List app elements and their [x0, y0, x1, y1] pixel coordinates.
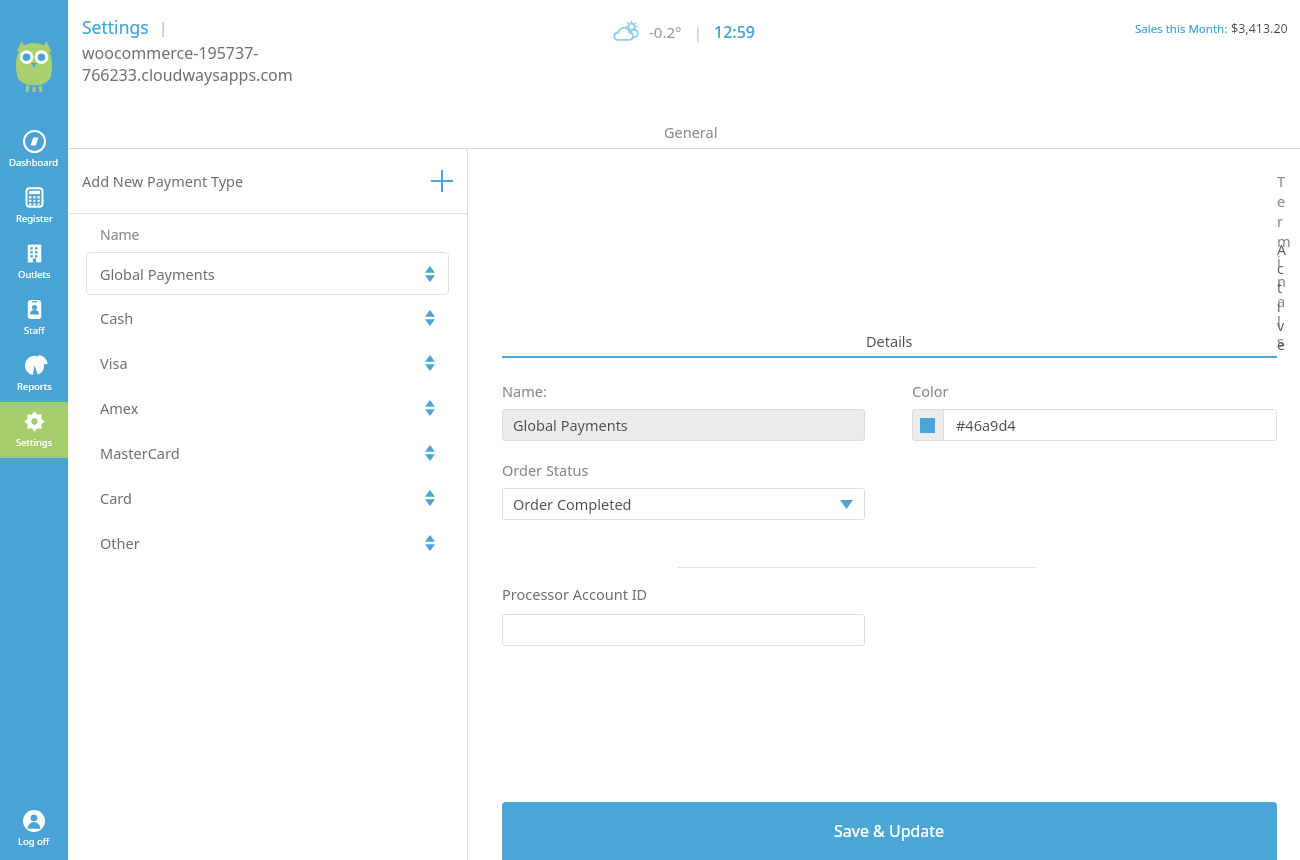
button[interactable]: Add New Payment Type	[68, 149, 467, 213]
staticText: Amex	[100, 398, 139, 418]
staticText: Processor Account ID	[502, 584, 648, 604]
staticText: Name:	[502, 381, 547, 401]
staticText: Name	[100, 225, 140, 244]
button[interactable]: Visa	[68, 340, 467, 385]
button[interactable]: Cash	[68, 295, 467, 340]
staticText: MasterCard	[100, 443, 180, 463]
staticText: |	[159, 17, 168, 37]
button[interactable]: #46a9d4	[912, 409, 1277, 441]
button[interactable]	[502, 614, 865, 646]
staticText: Order Status	[502, 460, 589, 480]
staticText: $3,413.20	[1231, 20, 1288, 37]
staticText: Outlets	[18, 268, 51, 281]
staticText: -0.2°	[649, 22, 682, 42]
staticText: |	[694, 23, 702, 42]
staticText: Cash	[100, 308, 134, 328]
button[interactable]: General	[82, 122, 1300, 149]
staticText: Register	[16, 212, 53, 225]
staticText: Global Payments	[513, 415, 628, 435]
button[interactable]: Reports	[0, 346, 68, 402]
button[interactable]: Details	[502, 331, 1277, 358]
staticText: #46a9d4	[956, 415, 1016, 435]
button[interactable]: Save & Update	[502, 802, 1277, 860]
staticText: Sales this Month:	[1135, 21, 1231, 37]
staticText: woocommerce-195737-	[82, 42, 259, 64]
staticText: Add New Payment Type	[82, 171, 244, 191]
button[interactable]: Outlets	[0, 234, 68, 290]
staticText: Details	[866, 331, 913, 351]
button[interactable]: Settings	[0, 402, 68, 458]
staticText: Global Payments	[100, 264, 215, 284]
staticText: Order Completed	[513, 494, 632, 514]
staticText: 12:59	[714, 21, 755, 43]
button[interactable]: Other	[68, 520, 467, 565]
staticText: Save & Update	[834, 820, 945, 842]
staticText: Other	[100, 533, 140, 553]
staticText: Color	[912, 381, 949, 401]
button[interactable]: Staff	[0, 290, 68, 346]
button[interactable]: MasterCard	[68, 430, 467, 475]
button[interactable]: Order Completed	[502, 488, 865, 520]
button[interactable]: Global Payments	[86, 252, 449, 295]
staticText: Settings	[82, 15, 149, 39]
staticText: Visa	[100, 353, 128, 373]
staticText: General	[664, 122, 718, 142]
staticText: Dashboard	[9, 156, 59, 169]
button[interactable]: Global Payments	[502, 409, 865, 441]
staticText: Log off	[18, 835, 50, 848]
button[interactable]: Amex	[68, 385, 467, 430]
button[interactable]: Log off	[0, 810, 68, 860]
button[interactable]: Register	[0, 178, 68, 234]
staticText: Settings	[16, 436, 53, 449]
staticText: Card	[100, 488, 132, 508]
staticText: 766233.cloudwaysapps.com	[82, 64, 293, 86]
button[interactable]: Dashboard	[0, 122, 68, 178]
button[interactable]: Card	[68, 475, 467, 520]
staticText: Staff	[24, 324, 45, 337]
staticText: Reports	[17, 380, 52, 393]
